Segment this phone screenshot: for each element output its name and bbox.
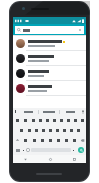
button[interactable] [29, 115, 37, 125]
button[interactable] [13, 36, 86, 51]
button[interactable] [18, 108, 38, 115]
button[interactable] [21, 135, 30, 145]
button[interactable]: Shift [13, 135, 21, 145]
button[interactable] [79, 115, 86, 125]
button[interactable] [37, 115, 44, 125]
button[interactable]: Symbols [14, 145, 21, 155]
button[interactable]: Home [38, 155, 62, 163]
button[interactable] [61, 125, 68, 135]
button[interactable] [44, 115, 51, 125]
button[interactable]: Recents [62, 155, 86, 163]
button[interactable] [21, 115, 29, 125]
button[interactable]: Emoji [25, 145, 31, 155]
button[interactable] [51, 115, 58, 125]
button[interactable] [25, 125, 33, 135]
button[interactable] [40, 125, 47, 135]
button[interactable] [65, 115, 72, 125]
button[interactable]: Settings [13, 108, 18, 115]
button[interactable] [54, 135, 62, 145]
button[interactable] [54, 125, 61, 135]
button[interactable] [71, 145, 76, 155]
button[interactable]: Back [13, 155, 38, 163]
button[interactable]: Voice input [80, 108, 86, 115]
button[interactable] [46, 135, 54, 145]
button[interactable] [70, 135, 78, 145]
button[interactable]: Search [15, 26, 84, 34]
button[interactable] [47, 125, 54, 135]
button[interactable] [13, 115, 21, 125]
button[interactable] [17, 125, 25, 135]
button[interactable] [33, 125, 40, 135]
button[interactable] [13, 66, 86, 81]
button[interactable] [68, 125, 75, 135]
button[interactable] [60, 108, 80, 115]
button[interactable] [30, 135, 38, 145]
button[interactable] [39, 108, 59, 115]
button[interactable]: Backspace [78, 135, 86, 145]
button[interactable] [13, 81, 86, 96]
button[interactable] [62, 135, 70, 145]
button[interactable] [75, 125, 82, 135]
button[interactable]: Clear [78, 28, 82, 32]
button[interactable] [72, 115, 79, 125]
button[interactable] [21, 145, 25, 155]
button[interactable] [38, 135, 46, 145]
button[interactable]: Search [76, 145, 85, 155]
button[interactable] [58, 115, 65, 125]
button[interactable] [13, 51, 86, 66]
other: Search [17, 28, 21, 32]
